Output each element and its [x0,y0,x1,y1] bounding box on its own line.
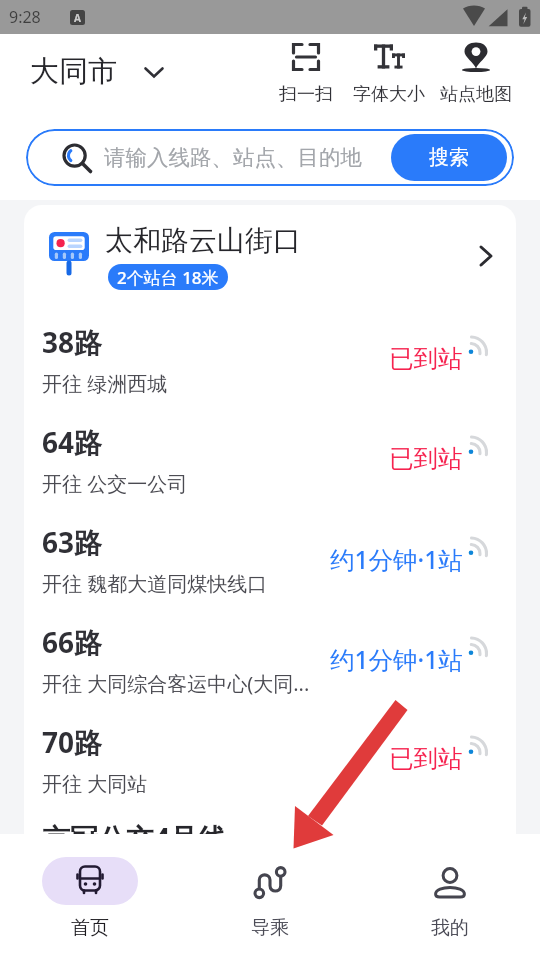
button[interactable]: 63路 [24,517,516,617]
button[interactable]: 太和路云山街口 [24,205,516,317]
staticText: 扫一扫 [279,83,333,106]
staticText: 2个站台 18米 [117,266,219,289]
staticText: 请输入线路、站点、目的地 [104,144,362,171]
button[interactable]: Search [26,129,514,186]
staticText: 太和路云山街口 [105,223,301,258]
staticText: 已到站 [389,443,463,474]
staticText: 66路 [42,623,103,661]
staticText: 已到站 [389,743,463,774]
button[interactable]: 我的 [360,834,540,940]
button[interactable]: 70路 [24,717,516,817]
staticText: 首页 [71,916,109,940]
other: Search [62,143,93,174]
staticText: 开往 公交一公司 [42,470,352,497]
button[interactable]: 扫一扫 [270,42,342,106]
staticText: 导乘 [251,916,289,940]
staticText: 开往 大同综合客运中心(大同... [42,670,352,697]
button[interactable]: 字体大小 [353,42,425,106]
button[interactable]: 64路 [24,417,516,517]
staticText: 开往 魏都大道同煤快线口 [42,570,352,597]
staticText: 站点地图 [440,83,512,106]
staticText: A [74,11,81,25]
staticText: 38路 [42,323,103,361]
button[interactable]: 站点地图 [440,42,512,106]
button[interactable]: 大同市 [0,47,174,96]
button[interactable]: 导乘 [180,834,360,940]
button[interactable]: 38路 [24,317,516,417]
staticText: 京冠公交4号线 [42,819,227,834]
staticText: 开往 大同站 [42,770,352,797]
staticText: 64路 [42,423,103,461]
other: Open stop detail [473,243,499,269]
staticText: 我的 [431,916,469,940]
staticText: 字体大小 [353,83,425,106]
staticText: 约1分钟·1站 [330,643,463,676]
staticText: 约1分钟·1站 [330,543,463,576]
button[interactable]: 首页 [0,834,180,940]
staticText: 9:28 [9,6,41,28]
staticText: 搜索 [429,145,469,170]
staticText: 已到站 [389,343,463,374]
staticText: 开往 绿洲西城 [42,370,352,397]
staticText: 70路 [42,723,103,761]
staticText: 63路 [42,523,103,561]
button[interactable]: 搜索 [391,134,507,181]
staticText: 大同市 [30,53,117,90]
button[interactable]: 66路 [24,617,516,717]
